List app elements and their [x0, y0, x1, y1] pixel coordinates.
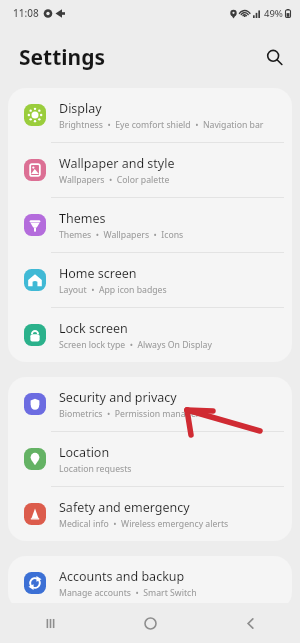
staticText: Lock screen	[59, 320, 128, 337]
staticText: Wallpaper and style	[59, 155, 175, 172]
staticText: Accounts and backup	[59, 568, 185, 585]
staticText: Screen lock type • Always On Display	[59, 339, 212, 351]
staticText: Biometrics • Permission manager	[59, 408, 200, 420]
button[interactable]: Search	[259, 42, 289, 72]
staticText: Location requests	[59, 463, 132, 475]
button[interactable]: Security and privacy	[8, 377, 292, 432]
button[interactable]: Home screen	[8, 253, 292, 308]
button[interactable]: Accounts and backup	[8, 556, 292, 610]
staticText: Home screen	[59, 265, 137, 282]
staticText: 11:08	[13, 6, 39, 20]
button[interactable]: Safety and emergency	[8, 487, 292, 541]
button[interactable]: Recents	[0, 603, 100, 643]
button[interactable]: Lock screen	[8, 308, 292, 362]
button[interactable]: Back	[200, 603, 300, 643]
staticText: Themes • Wallpapers • Icons	[59, 229, 184, 241]
staticText: Layout • App icon badges	[59, 284, 167, 296]
button[interactable]: Home	[100, 603, 200, 643]
staticText: Settings	[19, 43, 106, 72]
staticText: Themes	[59, 210, 106, 227]
staticText: Medical info • Wireless emergency alerts	[59, 518, 229, 530]
staticText: 49%	[264, 7, 283, 20]
staticText: Brightness • Eye comfort shield • Naviga…	[59, 119, 264, 131]
button[interactable]: Themes	[8, 198, 292, 253]
staticText: Safety and emergency	[59, 499, 190, 516]
button[interactable]: Location	[8, 432, 292, 487]
button[interactable]: Display	[8, 88, 292, 143]
staticText: Location	[59, 444, 110, 461]
staticText: Security and privacy	[59, 389, 177, 406]
staticText: Wallpapers • Color palette	[59, 174, 170, 186]
button[interactable]: Wallpaper and style	[8, 143, 292, 198]
staticText: Manage accounts • Smart Switch	[59, 587, 197, 599]
staticText: Display	[59, 100, 102, 117]
